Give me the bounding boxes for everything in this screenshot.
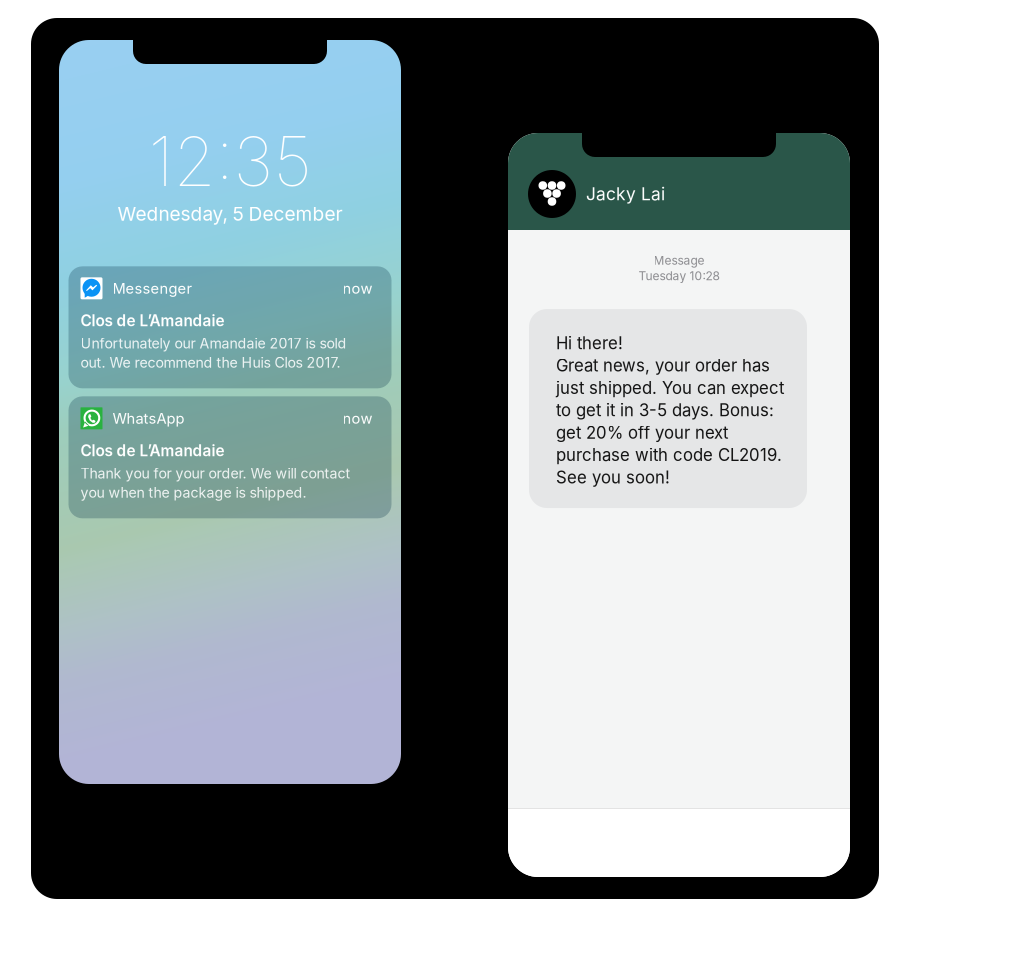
staticText: now (342, 409, 372, 427)
staticText: get 20% off your next (556, 422, 728, 443)
staticText: 12:35 (148, 120, 311, 202)
staticText: purchase with code CL2019. (556, 445, 782, 465)
staticText: just shipped. You can expect (556, 378, 784, 398)
staticText: Clos de L’Amandaie (80, 441, 224, 460)
button[interactable]: Messenger (68, 266, 391, 388)
staticText: you when the package is shipped. (80, 484, 306, 501)
staticText: WhatsApp (112, 409, 184, 427)
staticText: Wednesday, 5 December (117, 202, 342, 225)
staticText: Jacky Lai (586, 183, 665, 204)
staticText: Message (653, 253, 704, 267)
staticText: to get it in 3-5 days. Bonus: (556, 400, 774, 420)
staticText: out. We recommend the Huis Clos 2017. (80, 354, 340, 371)
staticText: See you soon! (556, 467, 670, 487)
staticText: Great news, your order has (556, 355, 770, 376)
staticText: Tuesday 10:28 (638, 268, 719, 283)
staticText: Clos de L’Amandaie (80, 311, 224, 330)
staticText: Thank you for your order. We will contac… (80, 465, 350, 482)
button[interactable]: WhatsApp (68, 396, 391, 518)
staticText: Messenger (112, 279, 192, 297)
staticText: Hi there! (556, 333, 623, 353)
staticText: Unfortunately our Amandaie 2017 is sold (80, 335, 346, 352)
button[interactable]: Contact profile (528, 170, 576, 218)
staticText: now (342, 279, 372, 297)
